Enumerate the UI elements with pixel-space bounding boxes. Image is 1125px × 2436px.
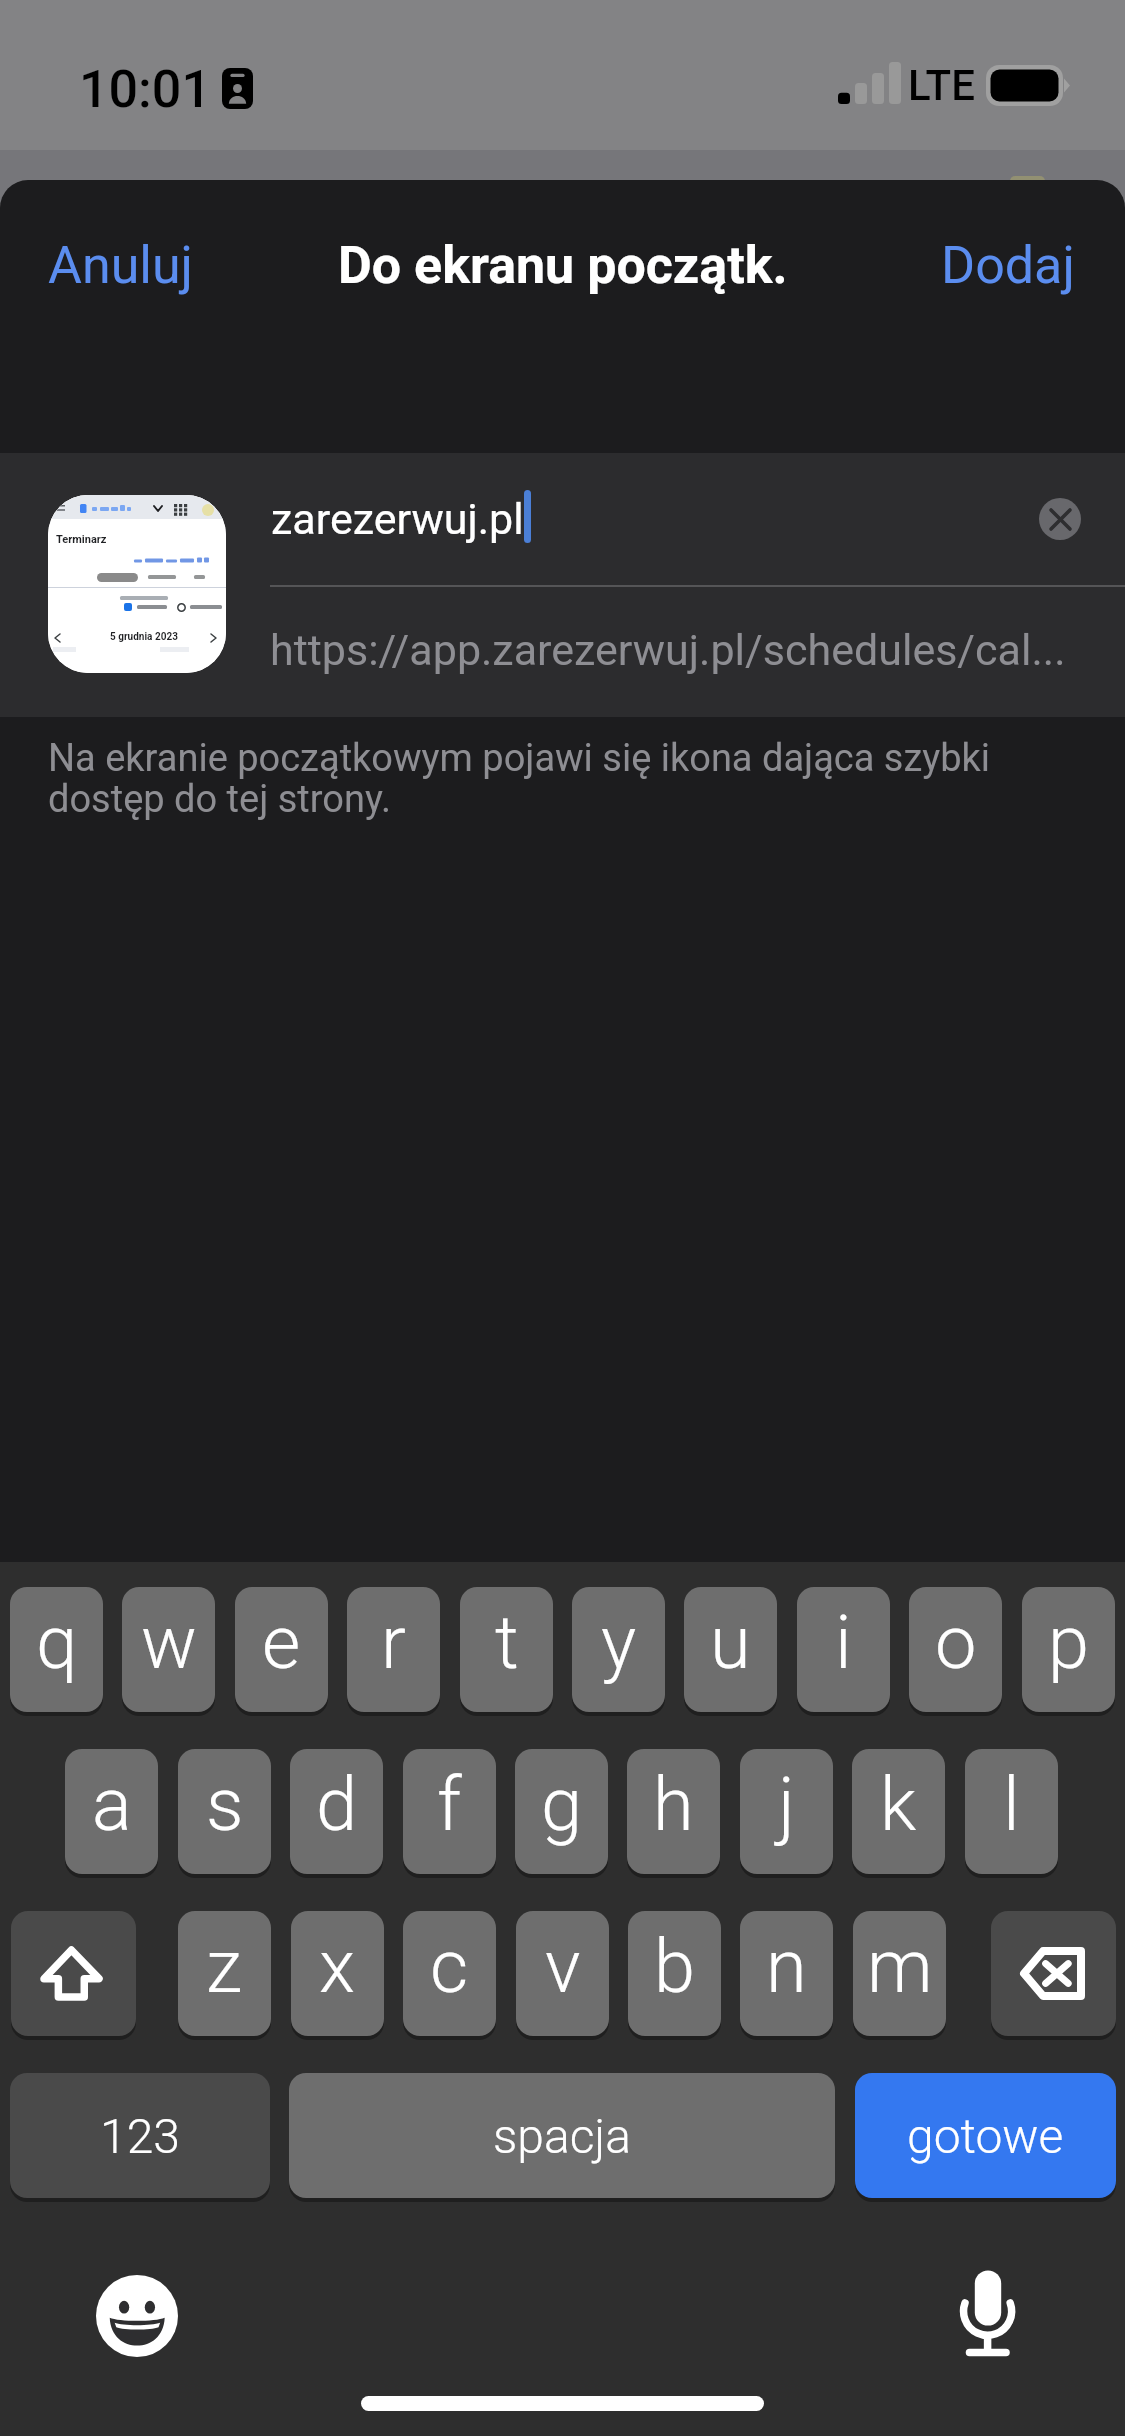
button[interactable]: f: [403, 1749, 496, 1874]
staticText: spacja: [493, 2108, 632, 2164]
staticText: g: [541, 1761, 583, 1848]
button[interactable]: spacja: [289, 2073, 835, 2198]
button[interactable]: [270, 453, 1030, 585]
staticText: h: [653, 1761, 694, 1848]
staticText: https://app.zarezerwuj.pl/schedules/cal.…: [270, 625, 1066, 675]
button[interactable]: z: [178, 1911, 271, 2036]
staticText: y: [601, 1599, 637, 1686]
staticText: k: [880, 1761, 917, 1848]
button[interactable]: m: [853, 1911, 946, 2036]
button[interactable]: Clear text: [1039, 498, 1081, 540]
button[interactable]: t: [460, 1587, 553, 1712]
button[interactable]: Dodaj: [941, 235, 1075, 296]
button[interactable]: Delete: [991, 1911, 1116, 2036]
staticText: Na ekranie początkowym pojawi się ikona …: [48, 736, 1008, 822]
button[interactable]: Emoji keyboard: [96, 2275, 178, 2357]
button[interactable]: e: [235, 1587, 328, 1712]
staticText: gotowe: [907, 2108, 1064, 2164]
button[interactable]: k: [852, 1749, 945, 1874]
button[interactable]: c: [403, 1911, 496, 2036]
staticText: n: [766, 1923, 807, 2010]
staticText: t: [495, 1599, 519, 1686]
staticText: e: [262, 1599, 301, 1686]
staticText: Do ekranu początk.: [338, 235, 788, 296]
staticText: r: [381, 1599, 406, 1686]
staticText: s: [206, 1761, 244, 1848]
button[interactable]: r: [347, 1587, 440, 1712]
button[interactable]: a: [65, 1749, 158, 1874]
staticText: Anuluj: [48, 235, 194, 296]
button[interactable]: p: [1022, 1587, 1115, 1712]
staticText: u: [710, 1599, 751, 1686]
button[interactable]: i: [797, 1587, 890, 1712]
button[interactable]: gotowe: [855, 2073, 1116, 2198]
staticText: Dodaj: [941, 235, 1075, 296]
button[interactable]: o: [909, 1587, 1002, 1712]
staticText: q: [36, 1599, 78, 1686]
staticText: f: [437, 1761, 462, 1848]
button[interactable]: Dictation: [940, 2262, 1034, 2362]
staticText: i: [835, 1599, 852, 1686]
staticText: c: [430, 1923, 469, 2010]
staticText: d: [316, 1761, 358, 1848]
staticText: w: [141, 1599, 197, 1686]
button[interactable]: g: [515, 1749, 608, 1874]
staticText: j: [778, 1761, 795, 1848]
button[interactable]: [270, 587, 1125, 717]
button[interactable]: y: [572, 1587, 665, 1712]
staticText: x: [319, 1923, 356, 2010]
staticText: zarezerwuj.pl: [271, 494, 524, 544]
staticText: v: [545, 1923, 581, 2010]
button[interactable]: l: [965, 1749, 1058, 1874]
staticText: z: [206, 1923, 243, 2010]
staticText: o: [935, 1599, 977, 1686]
button[interactable]: x: [291, 1911, 384, 2036]
staticText: Terminarz: [56, 533, 107, 546]
staticText: l: [1003, 1761, 1020, 1848]
staticText: 123: [100, 2108, 180, 2164]
button[interactable]: w: [122, 1587, 215, 1712]
button[interactable]: Shift: [11, 1911, 136, 2036]
button[interactable]: b: [628, 1911, 721, 2036]
staticText: p: [1048, 1599, 1090, 1686]
button[interactable]: n: [740, 1911, 833, 2036]
staticText: m: [867, 1923, 933, 2010]
button[interactable]: v: [516, 1911, 609, 2036]
button[interactable]: h: [627, 1749, 720, 1874]
button[interactable]: 123: [10, 2073, 270, 2198]
button[interactable]: Anuluj: [48, 235, 194, 296]
button[interactable]: s: [178, 1749, 271, 1874]
button[interactable]: d: [290, 1749, 383, 1874]
staticText: a: [92, 1761, 132, 1848]
button[interactable]: q: [10, 1587, 103, 1712]
staticText: LTE: [908, 61, 975, 110]
button[interactable]: u: [684, 1587, 777, 1712]
button[interactable]: j: [740, 1749, 833, 1874]
staticText: 5 grudnia 2023: [110, 631, 178, 643]
staticText: b: [654, 1923, 696, 2010]
staticText: 10:01: [79, 59, 211, 120]
